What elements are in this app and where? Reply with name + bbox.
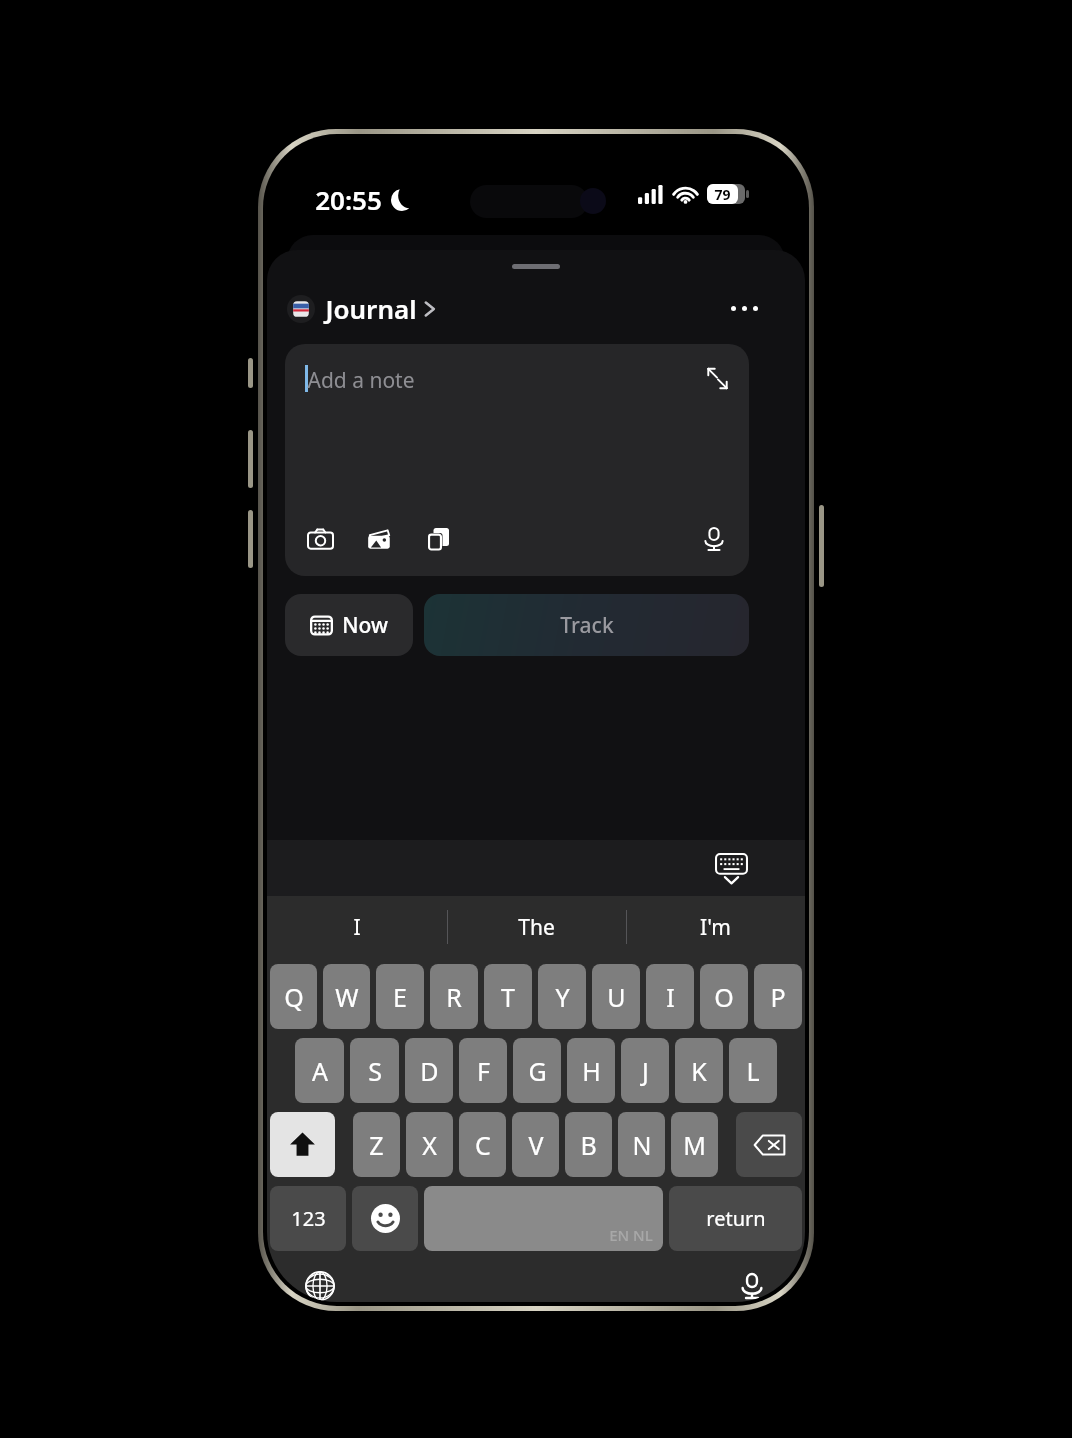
button[interactable]: Dictate <box>693 518 735 560</box>
button[interactable]: I <box>646 964 694 1029</box>
staticText: D <box>420 1054 439 1088</box>
button[interactable]: The <box>447 896 626 958</box>
button[interactable]: O <box>700 964 748 1029</box>
staticText: J <box>642 1054 649 1088</box>
button[interactable]: I <box>267 896 447 958</box>
staticText: return <box>706 1205 766 1232</box>
staticText: B <box>580 1128 597 1162</box>
staticText: F <box>477 1054 490 1088</box>
staticText: Journal <box>325 291 417 326</box>
button[interactable]: Dictation <box>729 1263 775 1302</box>
staticText: P <box>770 980 786 1014</box>
button[interactable]: W <box>323 964 370 1029</box>
button[interactable]: K <box>675 1038 723 1103</box>
staticText: T <box>501 980 515 1014</box>
button[interactable]: G <box>513 1038 561 1103</box>
staticText: W <box>335 980 359 1014</box>
button[interactable]: 123 <box>270 1186 346 1251</box>
staticText: Z <box>369 1128 384 1162</box>
button[interactable]: R <box>430 964 478 1029</box>
button[interactable]: Space <box>424 1186 663 1251</box>
staticText: EN NL <box>609 1225 653 1245</box>
button[interactable]: Photos <box>358 518 400 560</box>
button[interactable]: M <box>671 1112 718 1177</box>
button[interactable]: Y <box>538 964 586 1029</box>
staticText: M <box>683 1128 706 1162</box>
staticText: Now <box>342 611 388 640</box>
button[interactable]: F <box>459 1038 507 1103</box>
button[interactable]: Backspace <box>736 1112 802 1177</box>
button[interactable]: Camera <box>299 518 341 560</box>
button[interactable]: Documents <box>417 518 459 560</box>
button[interactable]: H <box>567 1038 615 1103</box>
staticText: X <box>422 1128 437 1162</box>
button[interactable]: Shift <box>270 1112 335 1177</box>
button[interactable]: Change keyboard <box>297 1263 343 1302</box>
button[interactable]: N <box>618 1112 665 1177</box>
button[interactable]: Emoji <box>352 1186 418 1251</box>
button[interactable]: S <box>350 1038 399 1103</box>
staticText: 20:55 <box>315 182 382 217</box>
staticText: Track <box>560 611 614 640</box>
button[interactable]: Now <box>285 594 413 656</box>
button[interactable]: B <box>565 1112 612 1177</box>
staticText: K <box>691 1054 707 1088</box>
staticText: Add a note <box>307 366 415 395</box>
button[interactable]: V <box>512 1112 559 1177</box>
button[interactable]: T <box>484 964 532 1029</box>
staticText: 79 <box>714 185 731 204</box>
button[interactable]: Q <box>270 964 317 1029</box>
button[interactable]: D <box>405 1038 453 1103</box>
staticText: O <box>714 980 734 1014</box>
button[interactable]: Expand <box>699 360 735 396</box>
staticText: G <box>528 1054 547 1088</box>
staticText: Q <box>284 980 304 1014</box>
button[interactable]: E <box>376 964 424 1029</box>
staticText: The <box>518 913 555 942</box>
button[interactable]: P <box>754 964 802 1029</box>
button[interactable]: C <box>459 1112 506 1177</box>
button[interactable]: A <box>295 1038 344 1103</box>
button[interactable]: I'm <box>626 896 805 958</box>
staticText: S <box>368 1054 382 1088</box>
button[interactable]: L <box>729 1038 777 1103</box>
staticText: I'm <box>700 913 731 942</box>
staticText: H <box>582 1054 601 1088</box>
button[interactable]: Journal <box>287 291 436 326</box>
button[interactable]: return <box>669 1186 802 1251</box>
button[interactable]: Track <box>424 594 749 656</box>
staticText: 123 <box>291 1205 326 1232</box>
button[interactable]: Z <box>353 1112 400 1177</box>
button[interactable]: Hide keyboard <box>707 844 755 892</box>
staticText: I <box>353 913 361 942</box>
staticText: L <box>746 1054 760 1088</box>
button[interactable]: X <box>406 1112 453 1177</box>
staticText: Y <box>555 980 570 1014</box>
staticText: U <box>607 980 626 1014</box>
staticText: N <box>632 1128 652 1162</box>
button[interactable]: More options <box>722 286 766 330</box>
staticText: V <box>528 1128 544 1162</box>
button[interactable]: J <box>621 1038 669 1103</box>
button[interactable]: U <box>592 964 640 1029</box>
staticText: I <box>666 980 675 1014</box>
staticText: R <box>446 980 462 1014</box>
staticText: E <box>393 980 407 1014</box>
staticText: A <box>312 1054 328 1088</box>
staticText: C <box>475 1128 491 1162</box>
button[interactable]: Add a note <box>285 344 749 576</box>
